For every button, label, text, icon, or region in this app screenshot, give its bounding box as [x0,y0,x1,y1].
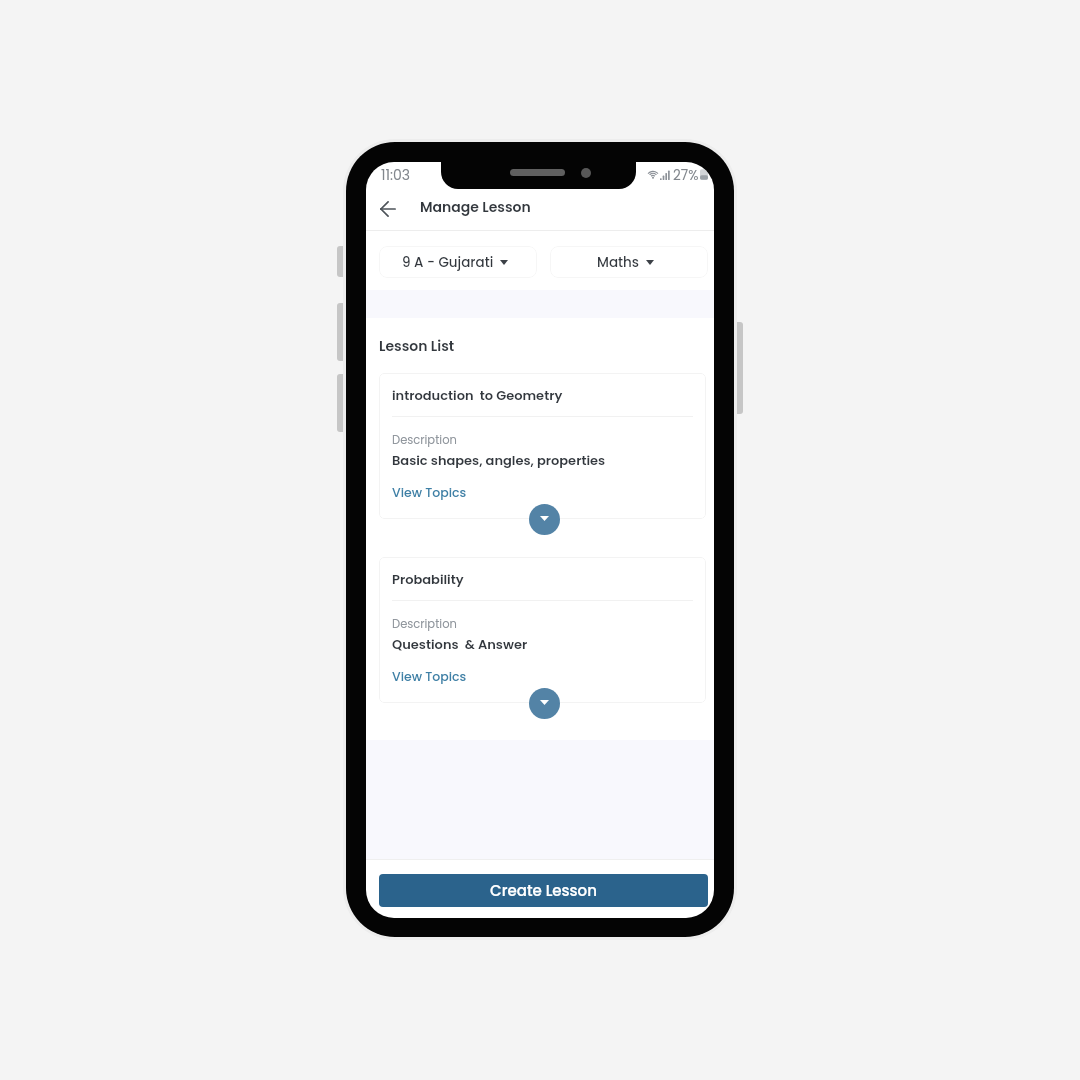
button[interactable]: View Topics [392,484,467,501]
staticText: Description [392,432,457,448]
button[interactable]: Expand lesson [529,688,560,719]
staticText: introduction to Geometry [392,386,563,404]
staticText: Description [392,616,457,632]
button[interactable]: Maths [550,246,708,278]
staticText: 27% [673,166,699,183]
button[interactable]: introduction to Geometry [379,373,706,519]
staticText: Manage Lesson [420,197,531,217]
staticText: Questions & Answer [392,635,528,653]
staticText: Basic shapes, angles, properties [392,451,606,469]
staticText: Probability [392,570,464,588]
staticText: 11:03 [381,165,410,185]
button[interactable]: View Topics [392,668,467,685]
button[interactable]: Expand lesson [529,504,560,535]
button[interactable]: 9 A - Gujarati [379,246,537,278]
button[interactable]: Back [368,190,408,228]
button[interactable]: Create Lesson [379,874,708,907]
button[interactable]: Probability [379,557,706,703]
staticText: Create Lesson [490,880,597,901]
staticText: Maths [597,253,640,272]
staticText: Lesson List [379,336,455,356]
staticText: 9 A - Gujarati [402,253,494,272]
